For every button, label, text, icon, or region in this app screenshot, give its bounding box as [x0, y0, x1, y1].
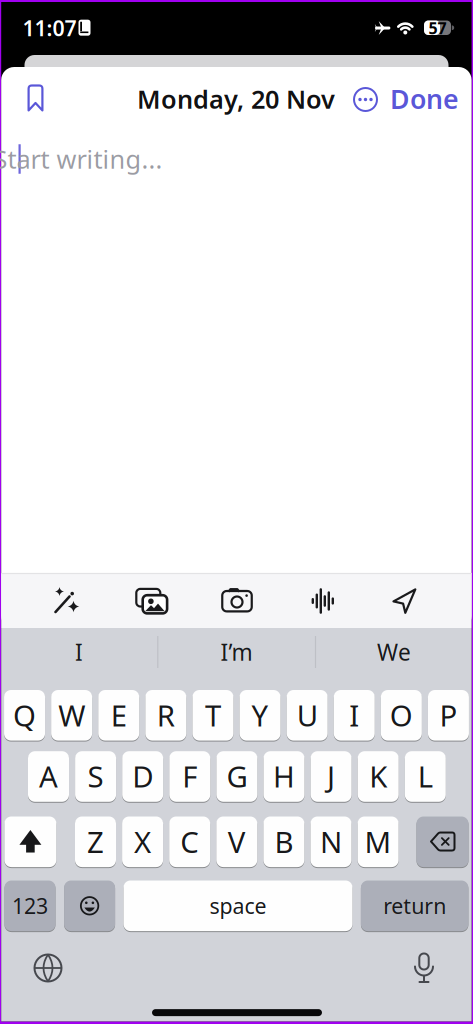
button[interactable]: H — [263, 751, 304, 803]
staticText: L — [418, 757, 433, 796]
staticText: T — [205, 695, 221, 734]
button[interactable]: I’m — [166, 630, 306, 674]
staticText: G — [226, 757, 247, 796]
staticText: I — [75, 637, 83, 667]
staticText: W — [58, 695, 85, 734]
button[interactable]: P — [428, 690, 469, 742]
staticText: A — [39, 757, 58, 796]
staticText: B — [274, 822, 293, 861]
button[interactable]: X — [122, 816, 163, 868]
button[interactable] — [64, 880, 115, 932]
staticText: J — [327, 757, 335, 796]
button[interactable]: Q — [4, 690, 45, 742]
button[interactable]: A — [28, 751, 69, 803]
staticText: P — [439, 695, 457, 734]
button[interactable]: K — [358, 751, 399, 803]
staticText: return — [383, 892, 446, 920]
button[interactable]: I — [334, 690, 375, 742]
button[interactable]: D — [122, 751, 163, 803]
staticText: V — [228, 822, 246, 861]
staticText: 123 — [12, 892, 48, 920]
button[interactable]: space — [123, 880, 352, 932]
staticText: K — [369, 757, 387, 796]
button[interactable]: Y — [240, 690, 281, 742]
staticText: D — [132, 757, 153, 796]
button[interactable]: E — [98, 690, 139, 742]
button[interactable] — [302, 579, 346, 623]
button[interactable]: B — [263, 816, 304, 868]
staticText: space — [209, 892, 266, 920]
staticText: Done — [390, 81, 459, 116]
button[interactable]: U — [287, 690, 328, 742]
staticText: 57 — [428, 17, 446, 38]
button[interactable]: Done — [382, 82, 466, 116]
button[interactable]: T — [192, 690, 233, 742]
button[interactable]: We — [324, 630, 464, 674]
button[interactable]: C — [169, 816, 210, 868]
staticText: N — [320, 822, 342, 861]
button[interactable]: O — [381, 690, 422, 742]
button[interactable]: M — [358, 816, 399, 868]
staticText: Z — [87, 822, 104, 861]
button[interactable]: G — [216, 751, 257, 803]
button[interactable] — [416, 816, 468, 868]
button[interactable] — [26, 946, 70, 990]
button[interactable] — [215, 579, 259, 623]
staticText: Monday, 20 Nov — [137, 82, 335, 116]
button[interactable] — [18, 78, 52, 118]
button[interactable]: N — [310, 816, 351, 868]
staticText: U — [297, 695, 318, 734]
staticText: H — [273, 757, 295, 796]
staticText: Start writing... — [0, 142, 162, 176]
button[interactable] — [348, 82, 382, 116]
button[interactable]: W — [51, 690, 92, 742]
staticText: R — [157, 695, 175, 734]
staticText: O — [390, 695, 413, 734]
button[interactable] — [4, 816, 56, 868]
staticText: Y — [252, 695, 269, 734]
button[interactable]: Z — [75, 816, 116, 868]
button[interactable] — [44, 579, 88, 623]
staticText: We — [377, 637, 411, 667]
staticText: E — [111, 695, 127, 734]
button[interactable]: V — [216, 816, 257, 868]
button[interactable]: L — [405, 751, 446, 803]
button[interactable]: F — [169, 751, 210, 803]
staticText: C — [180, 822, 199, 861]
staticText: I — [349, 695, 359, 734]
button[interactable] — [130, 579, 174, 623]
button[interactable] — [382, 579, 426, 623]
staticText: S — [88, 757, 104, 796]
staticText: I’m — [220, 637, 252, 667]
button[interactable]: I — [9, 630, 149, 674]
button[interactable]: J — [311, 751, 352, 803]
staticText: F — [182, 757, 197, 796]
staticText: Q — [13, 695, 36, 734]
staticText: 11:07 — [22, 14, 76, 42]
button[interactable]: R — [145, 690, 186, 742]
button[interactable] — [402, 946, 446, 990]
staticText: M — [365, 822, 392, 861]
button[interactable]: return — [361, 880, 468, 932]
staticText: X — [134, 822, 151, 861]
button[interactable]: S — [75, 751, 116, 803]
button[interactable]: 123 — [4, 880, 55, 932]
